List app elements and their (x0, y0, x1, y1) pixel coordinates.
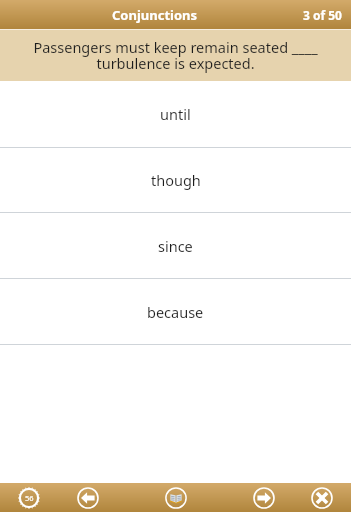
staticText: Conjunctions (112, 6, 198, 24)
staticText: until (160, 104, 191, 124)
button[interactable]: though (0, 148, 351, 212)
button[interactable]: because (0, 279, 351, 344)
staticText: because (147, 302, 204, 322)
button[interactable]: Previous question (77, 487, 99, 509)
staticText: 56 (25, 493, 34, 503)
staticText: since (158, 236, 193, 256)
staticText: though (151, 170, 201, 190)
staticText: Passengers must keep remain seated ____ … (28, 37, 323, 74)
button[interactable]: Dictionary (165, 487, 187, 509)
button[interactable]: Next question (253, 487, 275, 509)
button[interactable]: since (0, 213, 351, 278)
button[interactable]: until (0, 81, 351, 147)
button[interactable]: Timer (18, 487, 40, 509)
button[interactable]: Close quiz (311, 487, 333, 509)
staticText: 3 of 50 (303, 7, 342, 23)
